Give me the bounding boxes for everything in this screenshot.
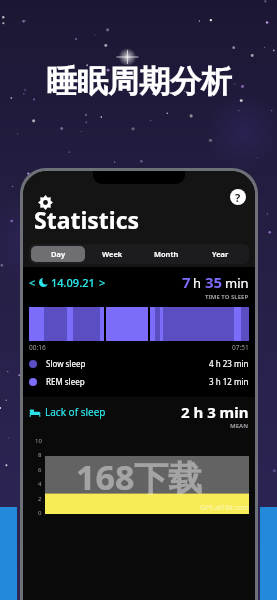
button[interactable]: Year <box>193 246 247 262</box>
staticText: 168下载 <box>76 454 203 500</box>
staticText: 2 <box>38 495 42 503</box>
staticText: 8 <box>38 451 42 459</box>
staticText: 4 h 23 min <box>209 358 249 369</box>
staticText: ? <box>235 190 241 205</box>
button[interactable]: Week <box>85 246 139 262</box>
staticText: 睡眠周期分析 <box>46 62 232 101</box>
staticText: > <box>99 275 106 290</box>
button[interactable]: Day <box>31 246 85 262</box>
staticText: Year <box>212 249 229 259</box>
staticText: MEAN <box>230 422 249 430</box>
staticText: REM sleep <box>46 376 85 387</box>
staticText: 07:51 <box>232 343 249 352</box>
button[interactable]: < <box>29 275 110 290</box>
staticText: 14.09.21 <box>51 275 95 290</box>
button[interactable]: Slow sleep <box>29 358 249 369</box>
staticText: 4 <box>38 480 42 488</box>
staticText: Month <box>154 249 179 259</box>
staticText: Week <box>102 249 123 259</box>
button[interactable]: Month <box>139 246 193 262</box>
staticText: h <box>193 274 202 292</box>
staticText: 10 <box>35 437 42 445</box>
staticText: < <box>29 275 36 290</box>
staticText: Statistics <box>34 204 140 235</box>
staticText: 0 <box>38 509 42 517</box>
staticText: 00:16 <box>29 343 46 352</box>
staticText: Lack of sleep <box>45 405 106 419</box>
button[interactable]: REM sleep <box>29 376 249 387</box>
staticText: TIME TO SLEEP <box>205 293 249 301</box>
staticText: 6 <box>38 466 42 474</box>
staticText: 3 h 12 min <box>209 376 249 387</box>
staticText: Day <box>51 249 65 259</box>
staticText: GPS.al168.com <box>200 503 249 513</box>
button[interactable]: Help <box>230 189 246 205</box>
staticText: Slow sleep <box>46 358 86 369</box>
staticText: min <box>225 274 249 292</box>
staticText: 35 <box>205 272 223 292</box>
staticText: 2 h 3 min <box>181 402 249 422</box>
button[interactable]: Settings <box>34 191 56 213</box>
staticText: 7 <box>182 272 191 292</box>
